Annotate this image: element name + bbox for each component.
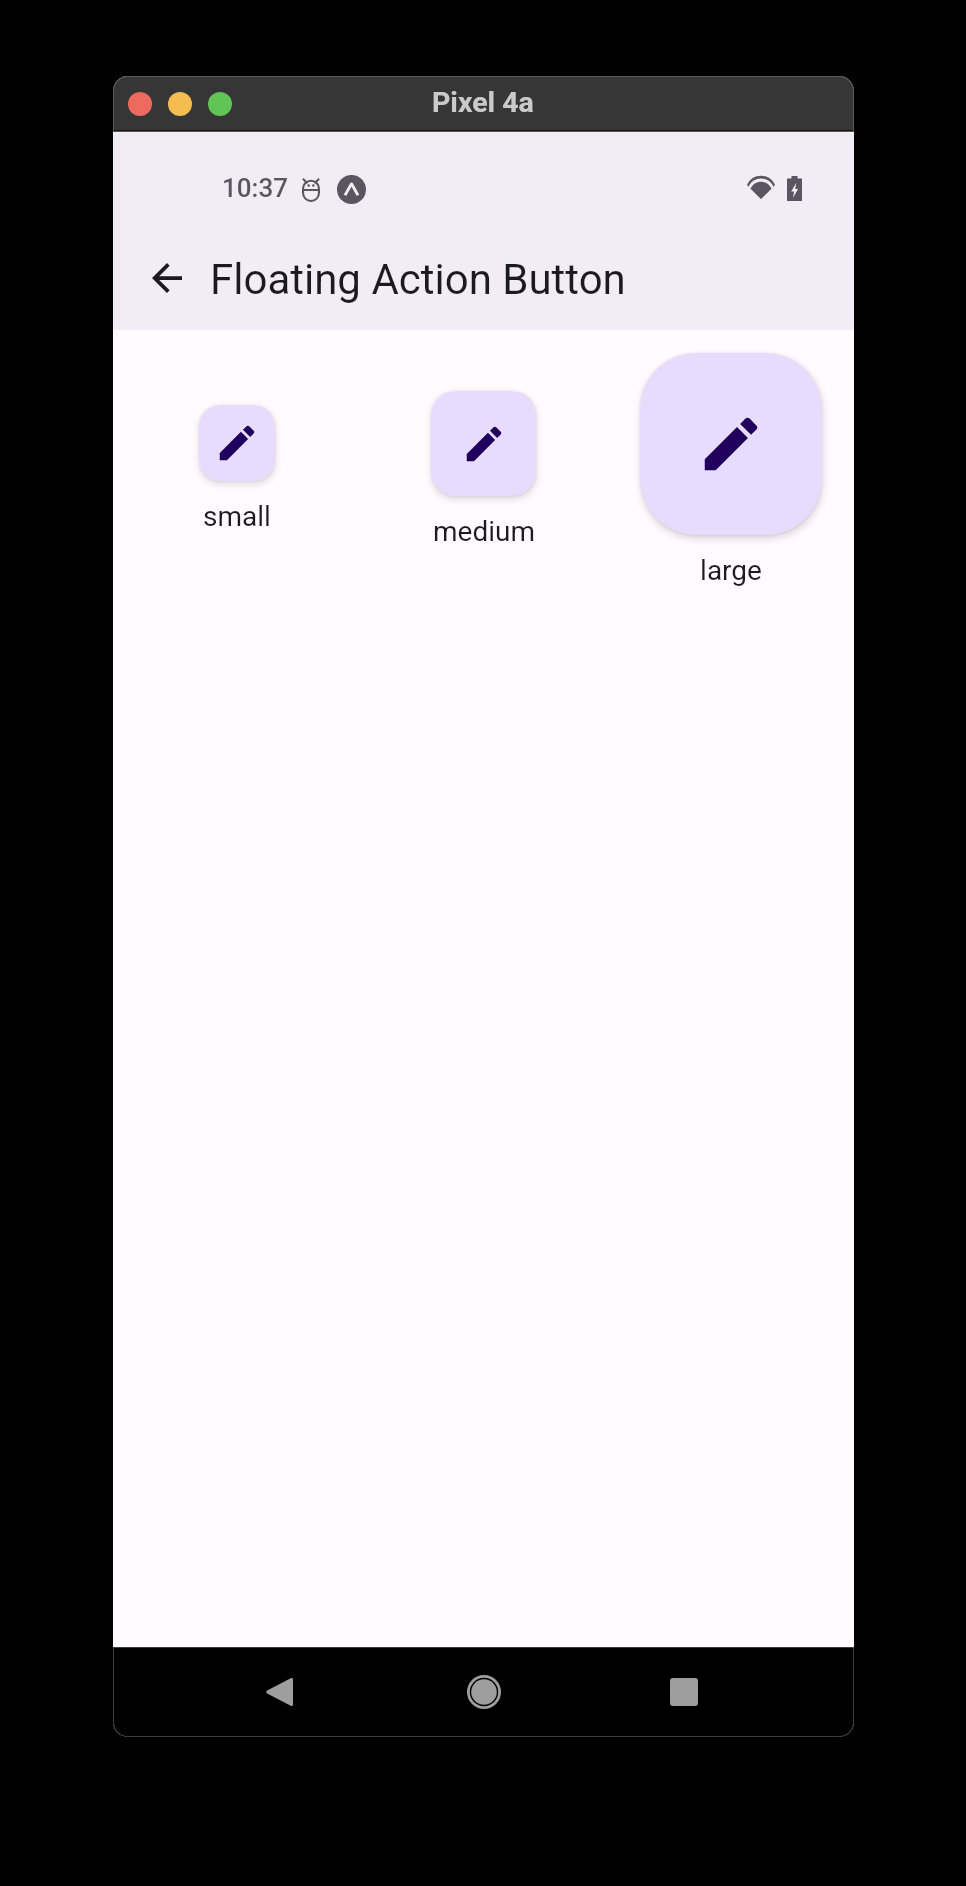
staticText: large bbox=[700, 554, 762, 587]
staticText: 10:37 bbox=[222, 173, 288, 203]
button[interactable]: Maximise window bbox=[208, 92, 232, 116]
staticText: Floating Action Button bbox=[210, 255, 626, 304]
button[interactable]: Recent apps bbox=[641, 1649, 727, 1735]
button[interactable]: Edit small bbox=[199, 405, 275, 481]
staticText: small bbox=[203, 500, 271, 533]
button[interactable]: Back bbox=[236, 1649, 322, 1735]
button[interactable]: Minimise window bbox=[168, 92, 192, 116]
staticText: Pixel 4a bbox=[432, 86, 534, 119]
button[interactable]: Home bbox=[441, 1649, 527, 1735]
staticText: medium bbox=[433, 515, 535, 548]
button[interactable]: Close window bbox=[128, 92, 152, 116]
button[interactable]: Edit large bbox=[640, 353, 822, 535]
button[interactable]: Edit medium bbox=[431, 391, 536, 496]
button[interactable]: Back bbox=[121, 232, 212, 323]
